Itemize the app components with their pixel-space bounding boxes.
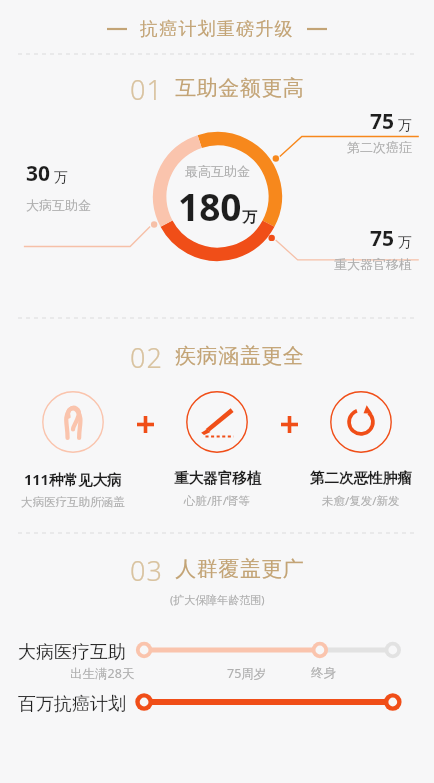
staticText: 最高互助金 <box>185 163 250 179</box>
staticText: 疾病涵盖更全 <box>175 343 304 369</box>
button[interactable]: 重大器官移植 <box>158 391 276 509</box>
staticText: 第二次恶性肿瘤 <box>310 469 412 487</box>
staticText: 万 <box>398 234 412 252</box>
staticText: 重大器官移植 <box>174 469 261 487</box>
staticText: 互助金额更高 <box>175 75 304 101</box>
staticText: 重大器官移植 <box>334 256 412 272</box>
button[interactable]: 第二次恶性肿瘤 <box>302 391 420 509</box>
button[interactable] <box>0 633 434 743</box>
staticText: 第二次癌症 <box>347 139 412 155</box>
button[interactable]: 常见大病 <box>14 391 132 509</box>
staticText: 75周岁 <box>227 665 267 682</box>
staticText: 未愈/复发/新发 <box>322 493 400 509</box>
staticText: (扩大保障年龄范围) <box>170 592 265 607</box>
staticText: 终身 <box>311 665 336 681</box>
staticText: 180 <box>178 181 242 231</box>
staticText: 心脏/肝/肾等 <box>184 493 251 509</box>
staticText: 01 <box>130 71 163 105</box>
staticText: 75 <box>370 224 395 253</box>
staticText: 111种常见大病 <box>24 469 122 489</box>
staticText: 02 <box>130 339 163 373</box>
staticText: 03 <box>130 552 163 586</box>
staticText: 出生满28天 <box>70 665 135 682</box>
staticText: 人群覆盖更广 <box>175 556 304 582</box>
staticText: 30 <box>26 159 51 188</box>
staticText: 大病医疗互助所涵盖 <box>21 495 125 509</box>
staticText: 75 <box>370 107 395 136</box>
staticText: 百万抗癌计划 <box>18 693 126 716</box>
staticText: 万 <box>242 208 257 227</box>
staticText: 大病互助金 <box>26 197 91 213</box>
staticText: 万 <box>398 117 412 135</box>
staticText: 抗癌计划重磅升级 <box>140 18 294 41</box>
staticText: 万 <box>54 169 68 187</box>
staticText: 大病医疗互助 <box>18 641 126 664</box>
